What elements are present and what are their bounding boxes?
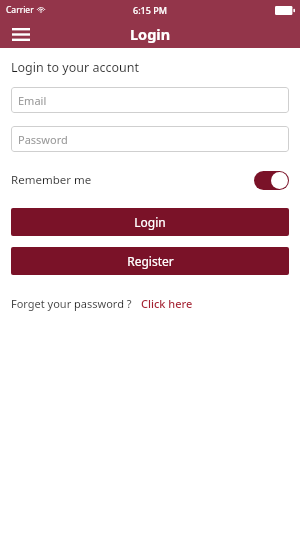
staticText: Remember me bbox=[11, 172, 92, 188]
button[interactable]: Login bbox=[11, 208, 289, 236]
button[interactable]: Remember me bbox=[11, 169, 289, 191]
button[interactable]: Register bbox=[11, 247, 289, 275]
button[interactable]: Open navigation menu bbox=[8, 21, 34, 47]
staticText: Click here bbox=[141, 296, 193, 311]
staticText: Login bbox=[134, 214, 166, 230]
staticText: 6:15 PM bbox=[133, 4, 167, 16]
staticText: Forget your password ? bbox=[11, 296, 132, 311]
staticText: Login to your account bbox=[11, 59, 139, 76]
staticText: Carrier bbox=[6, 4, 34, 16]
button[interactable]: Click here bbox=[141, 296, 193, 311]
staticText: Register bbox=[127, 253, 174, 269]
button[interactable]: Email bbox=[11, 87, 289, 113]
staticText: Login bbox=[130, 24, 171, 44]
staticText: Email bbox=[18, 93, 47, 108]
button[interactable]: Password bbox=[11, 126, 289, 152]
staticText: Password bbox=[18, 132, 68, 147]
